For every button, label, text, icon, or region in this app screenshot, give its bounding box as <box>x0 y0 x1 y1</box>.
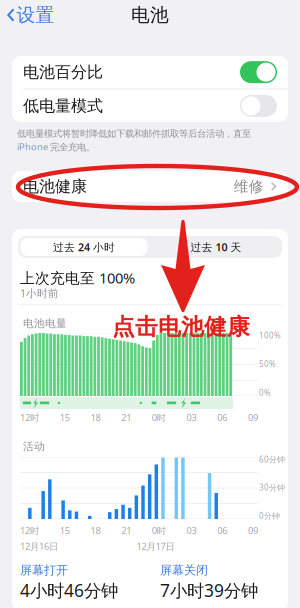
staticText: 设置 <box>17 3 55 26</box>
staticText: 电池电量 <box>23 317 67 330</box>
staticText: 屏幕关闭 <box>160 563 208 578</box>
staticText: 0时 <box>152 524 166 537</box>
staticText: 12时 <box>20 411 39 424</box>
staticText: 上次充电至 100% <box>20 268 135 287</box>
button[interactable]: 设置 <box>0 0 55 31</box>
button[interactable]: 电池百分比 <box>12 56 288 89</box>
staticText: 60分钟 <box>259 454 285 465</box>
staticText: 09 <box>248 411 258 424</box>
staticText: 过去 10 天 <box>190 240 241 254</box>
button[interactable]: 过去 24 小时 <box>20 238 147 256</box>
staticText: 06 <box>217 411 227 424</box>
staticText: 屏幕打开 <box>20 563 68 578</box>
staticText: 09 <box>248 524 258 537</box>
staticText: 03 <box>187 411 197 424</box>
staticText: 21 <box>121 411 131 424</box>
staticText: 12月17日 <box>137 540 175 552</box>
button[interactable]: 低电量模式 <box>12 89 288 122</box>
button[interactable]: 过去 10 天 <box>152 238 279 256</box>
staticText: 低电量模式将暂时降低如下载和邮件抓取等后台活动，直至 <box>17 128 251 139</box>
staticText: 12时 <box>20 524 39 537</box>
staticText: 03 <box>187 524 197 537</box>
staticText: 18 <box>90 411 100 424</box>
button[interactable]: 电池健康 <box>12 171 288 202</box>
staticText: 100% <box>259 330 281 341</box>
staticText: 活动 <box>23 440 45 453</box>
staticText: 过去 24 小时 <box>53 240 115 254</box>
staticText: 维修 <box>234 177 264 195</box>
staticText: 30分钟 <box>259 482 285 493</box>
staticText: 点击电池健康 <box>112 313 250 341</box>
staticText: 电池 <box>131 3 169 26</box>
staticText: 低电量模式 <box>23 96 103 116</box>
staticText: 06 <box>217 524 227 537</box>
staticText: 12月16日 <box>20 540 58 552</box>
staticText: 电池健康 <box>23 177 87 196</box>
staticText: 0分钟 <box>259 510 280 521</box>
staticText: 4小时46分钟 <box>20 579 118 602</box>
staticText: 0% <box>259 387 271 398</box>
staticText: 电池百分比 <box>23 62 103 82</box>
staticText: 15 <box>60 524 70 537</box>
staticText: 21 <box>121 524 131 537</box>
staticText: 1小时前 <box>20 286 59 300</box>
staticText: 18 <box>90 524 100 537</box>
staticText: 0时 <box>152 411 166 424</box>
staticText: iPhone 完全充电。 <box>17 140 95 153</box>
staticText: 15 <box>60 411 70 424</box>
staticText: 7小时39分钟 <box>160 579 258 602</box>
staticText: 50% <box>259 359 276 369</box>
